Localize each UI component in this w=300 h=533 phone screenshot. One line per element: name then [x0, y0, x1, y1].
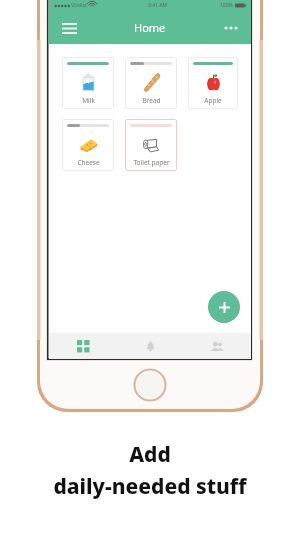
button[interactable]: Apple — [188, 57, 238, 109]
staticText: Add — [129, 440, 171, 469]
staticText: Apple — [204, 96, 222, 105]
staticText: Home — [134, 20, 166, 35]
button[interactable]: Toilet paper — [125, 119, 177, 171]
staticText: Milk — [82, 96, 95, 105]
button[interactable]: Menu — [57, 16, 81, 40]
button[interactable]: Lists — [49, 333, 117, 359]
staticText: 100% — [220, 2, 233, 9]
button[interactable]: Bread — [125, 57, 177, 109]
staticText: Bread — [142, 96, 161, 105]
button[interactable]: More options — [219, 16, 243, 40]
staticText: Toilet paper — [133, 158, 170, 167]
button[interactable]: Add item — [208, 291, 240, 323]
button[interactable]: Friends — [184, 333, 251, 359]
staticText: Vitalist — [71, 2, 87, 9]
staticText: daily-needed stuff — [53, 472, 247, 501]
staticText: Cheese — [77, 158, 100, 167]
staticText: 9:41 AM — [148, 2, 167, 9]
button[interactable]: Notifications — [117, 333, 184, 359]
button[interactable]: Milk — [62, 57, 114, 109]
button[interactable]: Cheese — [62, 119, 114, 171]
